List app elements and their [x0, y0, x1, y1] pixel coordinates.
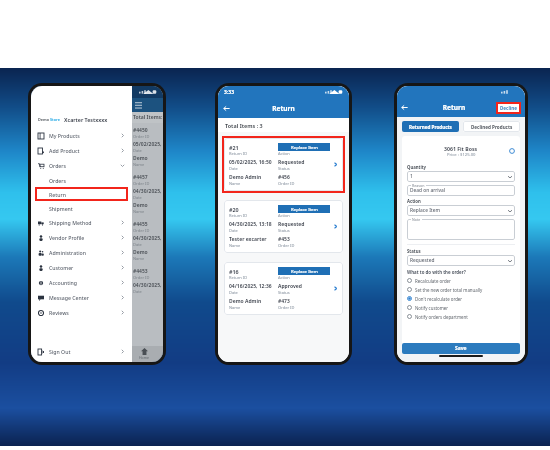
staticText: Order ID [133, 275, 150, 280]
staticText: Order ID [278, 305, 295, 310]
staticText: Declined Products [471, 124, 513, 130]
staticText: Replace Item [291, 144, 318, 150]
staticText: 3:33 [224, 89, 234, 96]
button[interactable]: Add Product [31, 143, 132, 158]
button[interactable] [407, 219, 515, 240]
button[interactable]: Save [402, 343, 520, 354]
staticText: Shipping Method [49, 219, 120, 226]
staticText: #4450 [133, 127, 148, 134]
button[interactable]: Dead on arrival [407, 185, 515, 196]
staticText: #4453 [133, 268, 148, 275]
staticText: Xcarter Testxxxx [64, 116, 108, 123]
staticText: Demo Admin [133, 249, 163, 256]
staticText: #20 [229, 206, 239, 213]
staticText: Add Product [49, 147, 120, 154]
staticText: Dead on arrival [410, 187, 446, 194]
button[interactable]: Return [35, 187, 128, 201]
button[interactable]: Shipment [35, 201, 128, 215]
button[interactable]: Replace Item [407, 205, 515, 216]
staticText: 1 [410, 173, 508, 180]
staticText: Status [278, 228, 290, 233]
button[interactable]: #21 [224, 138, 343, 191]
button[interactable]: My Products [31, 128, 132, 143]
staticText: Returned Products [409, 124, 452, 130]
staticText: Order ID [133, 181, 150, 186]
staticText: Demo Admin [229, 174, 262, 181]
staticText: 3061 Fit Boss [444, 145, 478, 152]
staticText: What to do with the order? [407, 269, 466, 275]
staticText: Return [49, 191, 66, 198]
staticText: Administration [49, 249, 120, 256]
button[interactable]: Orders [31, 158, 132, 173]
staticText: 05/02/2025, 16:50 [229, 159, 272, 166]
button[interactable]: Don't recalculate order [407, 294, 515, 303]
staticText: #16 [229, 268, 239, 275]
staticText: Reviews [49, 309, 120, 316]
staticText: Action [407, 198, 421, 204]
staticText: Return [412, 103, 496, 112]
button[interactable]: Decline [497, 103, 520, 113]
staticText: Name [229, 305, 241, 310]
button[interactable]: Accounting [31, 275, 132, 290]
staticText: 04/30/2025, 12: [133, 282, 163, 289]
button[interactable]: Notify customer [407, 303, 515, 312]
staticText: Decline [500, 105, 517, 111]
button[interactable]: Sign Out [31, 344, 132, 359]
staticText: Requested [278, 159, 305, 166]
staticText: Shipment [49, 205, 73, 212]
button[interactable]: Customer [31, 260, 132, 275]
button[interactable]: #20 [224, 200, 343, 253]
button[interactable]: Shipping Method [31, 215, 132, 230]
staticText: Name [133, 162, 145, 167]
staticText: Replace Item [291, 268, 318, 274]
staticText: #4455 [133, 221, 148, 228]
staticText: Don't recalculate order [415, 296, 463, 302]
staticText: Recalculate order [415, 278, 451, 284]
staticText: Date [229, 166, 238, 171]
staticText: Return [234, 104, 333, 113]
button[interactable]: Administration [31, 245, 132, 260]
button[interactable]: #16 [224, 262, 343, 315]
staticText: 04/30/2025, 12: [133, 188, 163, 195]
staticText: Return ID [229, 151, 248, 156]
staticText: Status [278, 290, 290, 295]
staticText: Replace Item [291, 206, 318, 212]
staticText: Demo Admin [133, 155, 163, 162]
staticText: Name [229, 243, 241, 248]
button[interactable]: Back [218, 100, 234, 116]
staticText: Approved [278, 283, 302, 290]
button[interactable]: Back [397, 100, 412, 115]
button[interactable]: Reviews [31, 305, 132, 320]
button[interactable]: 1 [407, 171, 515, 182]
staticText: Notify customer [415, 305, 449, 311]
staticText: Order ID [133, 134, 150, 139]
staticText: Date [229, 228, 238, 233]
staticText: Set the new order total manually [415, 287, 483, 293]
staticText: Action [278, 213, 290, 218]
staticText: #4457 [133, 174, 148, 181]
staticText: Date [229, 290, 238, 295]
staticText: Price : $125.00 [447, 152, 476, 158]
staticText: Requested [410, 257, 508, 264]
staticText: #453 [278, 236, 290, 243]
staticText: Vendor Profile [49, 234, 120, 241]
button[interactable]: Requested [407, 255, 515, 266]
staticText: Demo [38, 117, 50, 122]
button[interactable]: Orders [35, 173, 128, 187]
staticText: Name [133, 256, 145, 261]
button[interactable]: Set the new order total manually [407, 285, 515, 294]
staticText: Orders [49, 177, 67, 184]
staticText: Name [229, 181, 241, 186]
button[interactable]: Notify orders department [407, 312, 515, 321]
staticText: #456 [278, 174, 290, 181]
staticText: Orders [49, 162, 120, 169]
button[interactable]: Recalculate order [407, 276, 515, 285]
staticText: Action [278, 275, 290, 280]
button[interactable]: Returned Products [402, 121, 459, 132]
button[interactable]: Declined Products [463, 121, 520, 132]
staticText: My Products [49, 132, 120, 139]
staticText: Tester excarter [229, 236, 267, 243]
button[interactable]: Message Center [31, 290, 132, 305]
button[interactable]: Vendor Profile [31, 230, 132, 245]
staticText: Notify orders department [415, 314, 468, 320]
